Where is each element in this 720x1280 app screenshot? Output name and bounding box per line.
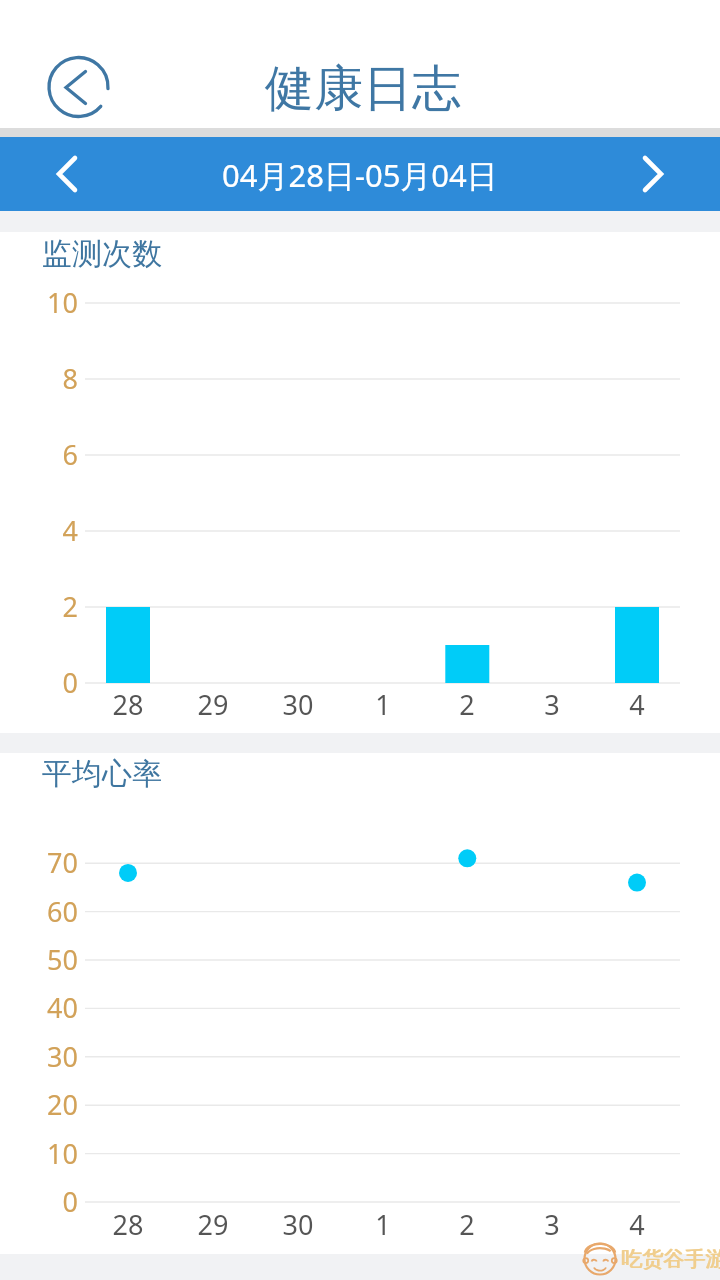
staticText: 吃货谷手游 — [621, 1246, 720, 1272]
staticText: 监测次数 — [42, 235, 162, 273]
staticText: 28 — [88, 1206, 168, 1243]
staticText: 2 — [427, 686, 507, 723]
staticText: 吃货谷手游 — [622, 1246, 720, 1272]
staticText: 0 — [8, 1183, 78, 1220]
button[interactable]: Back — [41, 50, 116, 125]
staticText: 30 — [258, 686, 338, 723]
staticText: 6 — [8, 436, 78, 473]
staticText: 20 — [8, 1086, 78, 1123]
staticText: 70 — [8, 844, 78, 881]
staticText: 50 — [8, 941, 78, 978]
staticText: 4 — [8, 512, 78, 549]
staticText: 30 — [258, 1206, 338, 1243]
button[interactable]: Previous week — [22, 137, 112, 211]
staticText: 平均心率 — [42, 755, 162, 793]
staticText: 04月28日-05月04日 — [222, 154, 498, 196]
staticText: 2 — [8, 588, 78, 625]
staticText: 3 — [512, 686, 592, 723]
staticText: 1 — [343, 1206, 423, 1243]
staticText: 28 — [88, 686, 168, 723]
staticText: 4 — [597, 686, 677, 723]
staticText: 30 — [8, 1038, 78, 1075]
staticText: 1 — [343, 686, 423, 723]
staticText: 10 — [8, 1135, 78, 1172]
staticText: 4 — [597, 1206, 677, 1243]
staticText: 健康日志 — [265, 58, 461, 120]
staticText: 3 — [512, 1206, 592, 1243]
staticText: 0 — [8, 664, 78, 701]
staticText: 60 — [8, 893, 78, 930]
staticText: 29 — [173, 1206, 253, 1243]
staticText: 8 — [8, 360, 78, 397]
staticText: 29 — [173, 686, 253, 723]
staticText: 40 — [8, 989, 78, 1026]
staticText: 2 — [427, 1206, 507, 1243]
button[interactable]: Next week — [608, 137, 698, 211]
staticText: 10 — [8, 284, 78, 321]
